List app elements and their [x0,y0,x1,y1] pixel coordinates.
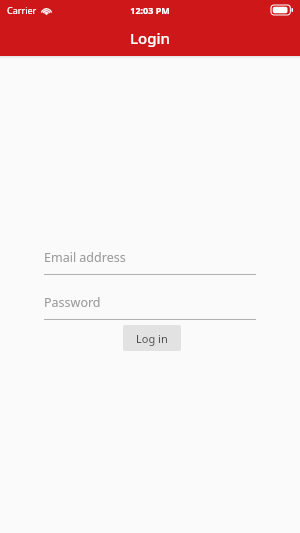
staticText: Password [44,294,101,311]
button[interactable]: Log in [123,325,181,351]
button[interactable]: Password [44,294,256,320]
other: Wi-Fi signal [41,6,52,15]
staticText: Email address [44,249,126,266]
other: Battery [271,5,293,15]
staticText: Log in [136,331,168,346]
staticText: 12:03 PM [130,4,170,16]
staticText: Carrier [7,4,37,16]
staticText: Login [130,28,170,48]
button[interactable]: Email address [44,249,256,275]
